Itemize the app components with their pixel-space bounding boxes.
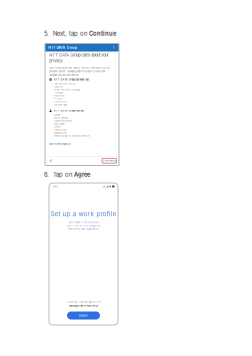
staticText: 1:05 bbox=[52, 185, 58, 188]
staticText: Camera roll bbox=[54, 100, 67, 103]
staticText: personal content. Managing administrator… bbox=[49, 70, 105, 73]
staticText: company use and save devices. bbox=[49, 74, 79, 76]
button[interactable]: CONTINUE bbox=[102, 159, 116, 162]
button[interactable]: Information bbox=[112, 45, 116, 50]
staticText: Agree bbox=[74, 171, 90, 178]
staticText: Email and other messages bbox=[54, 88, 80, 91]
staticText: CONTINUE bbox=[103, 159, 116, 162]
staticText: Pictures bbox=[54, 97, 62, 100]
staticText: Location bbox=[54, 85, 62, 88]
staticText: NTT DATA Group may see bbox=[54, 109, 84, 112]
staticText: Operating system bbox=[54, 120, 72, 122]
staticText: To continue, read and agree to the bbox=[66, 301, 100, 303]
staticText: Serial number bbox=[54, 117, 68, 119]
button[interactable]: More information bbox=[49, 143, 70, 146]
staticText: profile that will be managed and bbox=[66, 224, 100, 227]
staticText: While working on your device, you will s… bbox=[49, 66, 109, 69]
staticText: Passwords bbox=[54, 94, 64, 97]
button[interactable]: Samsung Knox Privacy Policy bbox=[69, 304, 98, 307]
button[interactable]: Back bbox=[48, 157, 54, 164]
staticText: Phone storage for corporate devices bbox=[54, 135, 89, 137]
staticText: Set up a work profile bbox=[50, 210, 116, 218]
staticText: NTT DATA Group bbox=[48, 45, 77, 50]
staticText: Tap on bbox=[49, 171, 74, 178]
staticText: 6. bbox=[44, 171, 49, 178]
staticText: privacy bbox=[49, 58, 62, 63]
staticText: You're about to set up a work bbox=[68, 221, 98, 224]
staticText: NTT DATA Group can never see bbox=[54, 78, 89, 81]
staticText: Work apps bbox=[54, 123, 64, 125]
staticText: Device care bbox=[54, 129, 66, 131]
button[interactable]: Agree bbox=[67, 311, 100, 319]
staticText: Manufacturer bbox=[54, 132, 67, 134]
staticText: Company bbox=[54, 91, 63, 94]
staticText: Name bbox=[54, 126, 60, 128]
staticText: Personal apps bbox=[54, 103, 67, 106]
staticText: Continue bbox=[89, 30, 116, 37]
staticText: More information bbox=[49, 143, 70, 146]
staticText: NTT DATA Group cares about your bbox=[49, 52, 109, 57]
staticText: Agree bbox=[79, 314, 88, 317]
staticText: 5. bbox=[44, 30, 49, 37]
staticText: Text and chat history bbox=[54, 82, 75, 85]
staticText: i bbox=[113, 45, 114, 50]
staticText: Samsung Knox Privacy Policy bbox=[69, 304, 98, 307]
staticText: monitored by your organization. bbox=[67, 228, 99, 230]
staticText: Next, tap on bbox=[49, 30, 89, 37]
staticText: Model bbox=[54, 114, 60, 116]
